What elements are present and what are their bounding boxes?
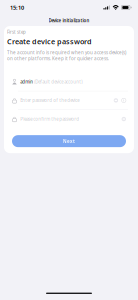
staticText: First step	[7, 29, 26, 35]
staticText: Please confirm the password	[20, 116, 79, 122]
staticText: The account info is required when you ac…	[7, 49, 126, 62]
staticText: 15:10	[10, 4, 24, 11]
staticText: Create device password	[7, 36, 92, 46]
staticText: (Default device account)	[33, 79, 82, 85]
button[interactable]: Next	[12, 135, 126, 147]
staticText: Next	[63, 138, 75, 144]
staticText: Device initialization	[48, 17, 89, 23]
staticText: admin	[20, 79, 33, 85]
staticText: Enter password of the device	[20, 97, 79, 103]
